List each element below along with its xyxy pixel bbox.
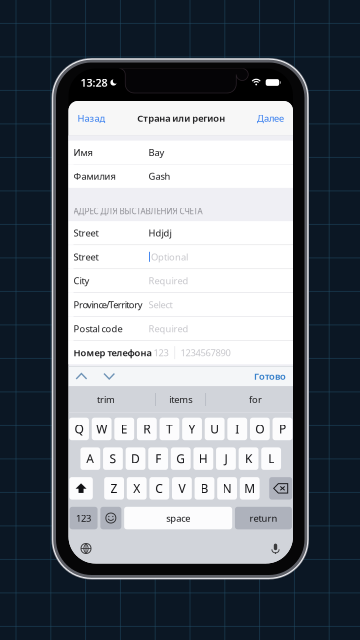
button[interactable]: 123 — [69, 507, 97, 529]
button[interactable]: space — [124, 507, 232, 529]
staticText: Номер телефона — [73, 346, 151, 359]
button[interactable]: G — [171, 447, 191, 470]
staticText: 13:28 — [80, 75, 107, 90]
button[interactable]: P — [272, 418, 292, 440]
staticText: Province/Territory — [73, 298, 143, 311]
staticText: C — [155, 480, 163, 496]
staticText: L — [268, 451, 274, 467]
staticText: K — [245, 451, 252, 467]
button[interactable]: R — [137, 418, 157, 440]
staticText: Street — [73, 227, 98, 239]
button[interactable]: D — [126, 447, 145, 470]
staticText: Gash — [148, 170, 170, 182]
button[interactable]: Y — [182, 418, 202, 440]
staticText: H — [199, 451, 208, 467]
staticText: Y — [188, 421, 195, 437]
button[interactable]: Dictation — [267, 539, 284, 557]
staticText: Готово — [254, 370, 286, 382]
button[interactable]: trim — [68, 386, 143, 412]
staticText: Street — [73, 251, 98, 263]
button[interactable]: Q — [69, 418, 89, 440]
staticText: F — [155, 451, 161, 467]
button[interactable]: C — [149, 477, 169, 500]
staticText: S — [109, 451, 116, 467]
button[interactable]: Previous field — [72, 369, 90, 384]
staticText: items — [169, 393, 192, 406]
staticText: Hdjdj — [148, 227, 171, 239]
staticText: Select — [148, 298, 172, 311]
button[interactable] — [100, 507, 121, 529]
button[interactable]: L — [261, 447, 281, 470]
button[interactable]: return — [235, 507, 292, 529]
button[interactable]: N — [217, 477, 237, 500]
staticText: I — [235, 421, 239, 437]
button[interactable] — [269, 477, 292, 500]
staticText: City — [73, 275, 89, 287]
button[interactable]: O — [250, 418, 270, 440]
button[interactable]: Назад — [77, 108, 105, 128]
staticText: Optional — [151, 251, 188, 263]
staticText: B — [200, 480, 208, 496]
staticText: D — [131, 451, 140, 467]
staticText: Postal code — [73, 322, 122, 335]
staticText: M — [244, 480, 255, 496]
staticText: Далее — [257, 112, 284, 124]
button[interactable]: M — [240, 477, 260, 500]
button[interactable]: S — [103, 447, 123, 470]
button[interactable]: T — [159, 418, 179, 440]
staticText: Bay — [148, 146, 164, 158]
button[interactable]: I — [227, 418, 247, 440]
staticText: J — [224, 451, 227, 467]
staticText: 123 — [76, 512, 91, 524]
button[interactable]: K — [239, 447, 258, 470]
button[interactable] — [69, 477, 93, 500]
staticText: Фамилия — [73, 170, 115, 182]
button[interactable]: Z — [104, 477, 124, 500]
staticText: R — [143, 421, 150, 437]
button[interactable]: U — [205, 418, 224, 440]
staticText: U — [210, 421, 219, 437]
staticText: Имя — [73, 146, 92, 158]
staticText: X — [133, 480, 140, 496]
staticText: 1234567890 — [181, 346, 231, 359]
staticText: P — [279, 421, 286, 437]
button[interactable]: Change keyboard — [77, 540, 94, 557]
button[interactable]: W — [92, 418, 111, 440]
staticText: Назад — [77, 112, 105, 124]
staticText: O — [255, 421, 264, 437]
staticText: V — [178, 480, 185, 496]
button[interactable]: Готово — [254, 367, 286, 385]
staticText: for — [249, 393, 262, 406]
staticText: trim — [97, 393, 115, 406]
button[interactable]: V — [172, 477, 192, 500]
staticText: space — [166, 512, 190, 524]
button[interactable]: A — [80, 447, 100, 470]
staticText: Q — [74, 421, 83, 437]
staticText: 123 — [153, 346, 168, 359]
button[interactable]: items — [143, 386, 218, 412]
button[interactable]: X — [127, 477, 147, 500]
staticText: Z — [111, 480, 118, 496]
staticText: Страна или регион — [137, 112, 225, 124]
button[interactable]: Далее — [257, 108, 284, 128]
button[interactable]: B — [195, 477, 214, 500]
staticText: T — [166, 421, 173, 437]
staticText: Required — [148, 275, 188, 287]
staticText: АДРЕС ДЛЯ ВЫСТАВЛЕНИЯ СЧЕТА — [73, 206, 202, 216]
button[interactable]: Next field — [100, 369, 118, 384]
button[interactable]: H — [193, 447, 213, 470]
staticText: A — [86, 451, 94, 467]
staticText: E — [121, 421, 128, 437]
staticText: return — [249, 512, 277, 524]
button[interactable]: F — [148, 447, 168, 470]
button[interactable]: J — [216, 447, 236, 470]
staticText: W — [96, 421, 107, 437]
button[interactable]: E — [114, 418, 134, 440]
staticText: G — [176, 451, 185, 467]
staticText: N — [223, 480, 232, 496]
staticText: Required — [148, 322, 188, 335]
button[interactable]: for — [218, 386, 293, 412]
